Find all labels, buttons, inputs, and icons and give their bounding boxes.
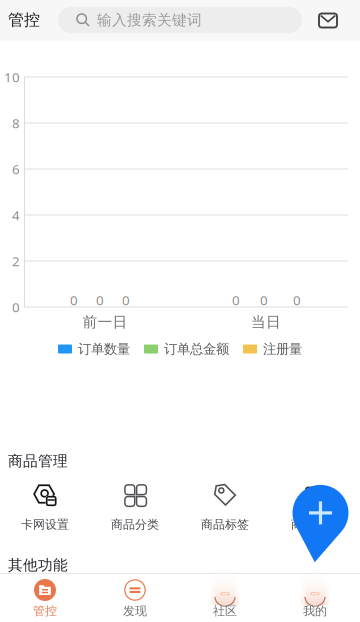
button[interactable]: 商品标签 [180,483,270,530]
staticText: 0 [293,291,301,309]
button[interactable]: 管控 [0,573,90,622]
staticText: 6 [12,160,20,178]
button[interactable]: 社区 [180,573,270,622]
staticText: 10 [4,68,20,86]
staticText: 当日 [251,313,281,331]
staticText: 社区 [213,604,237,618]
button[interactable]: 我的 [270,573,360,622]
button[interactable]: 卡网设置 [0,483,90,530]
staticText: 商品管理 [291,517,339,532]
button[interactable]: 商品管理 [270,483,360,530]
staticText: 4 [12,206,20,224]
staticText: 卡网设置 [21,517,69,532]
staticText: 0 [232,291,240,309]
staticText: 2 [12,252,20,270]
button[interactable]: Messages [311,0,345,41]
staticText: 输入搜索关键词 [97,11,202,29]
staticText: 0 [96,291,104,309]
staticText: 管控 [8,10,40,30]
staticText: 其他功能 [8,556,68,574]
staticText: 管控 [33,604,57,618]
staticText: 发现 [123,604,147,618]
staticText: 前一日 [82,313,127,331]
staticText: 0 [70,291,78,309]
staticText: 商品标签 [201,517,249,532]
staticText: 0 [260,291,268,309]
staticText: 商品分类 [111,517,159,532]
staticText: 订单数量 [78,341,130,357]
staticText: 0 [122,291,130,309]
staticText: 0 [12,298,20,316]
staticText: 注册量 [263,341,302,357]
staticText: 我的 [303,604,327,618]
staticText: 订单总金额 [164,341,229,357]
button[interactable]: 发现 [90,573,180,622]
staticText: 8 [12,114,20,132]
staticText: 商品管理 [8,452,68,470]
button[interactable]: 商品分类 [90,483,180,530]
